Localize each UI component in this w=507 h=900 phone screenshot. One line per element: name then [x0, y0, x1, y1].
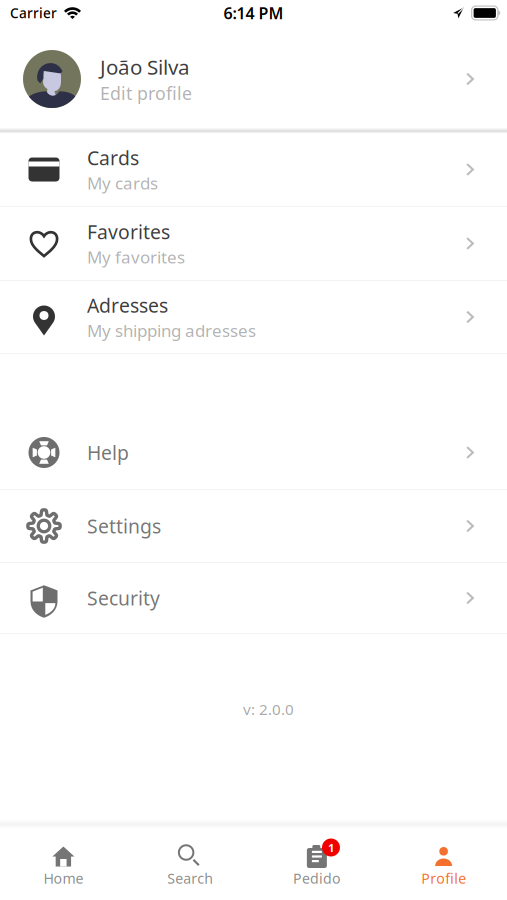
button[interactable]: Settings [0, 490, 507, 562]
staticText: Search [167, 869, 213, 888]
button[interactable]: Adresses [0, 281, 507, 353]
button[interactable]: Cards [0, 133, 507, 206]
button[interactable]: Security [0, 563, 507, 633]
button[interactable]: Help [0, 416, 507, 489]
staticText: My favorites [87, 246, 185, 268]
staticText: Settings [87, 513, 161, 539]
staticText: João Silva [100, 53, 190, 80]
staticText: Profile [421, 869, 466, 888]
staticText: Favorites [87, 219, 170, 245]
button[interactable]: Search [127, 826, 254, 900]
staticText: Security [87, 585, 160, 611]
staticText: 1 [328, 840, 334, 855]
button[interactable]: Profile [380, 826, 507, 900]
staticText: My cards [87, 172, 158, 194]
staticText: Help [87, 440, 129, 465]
button[interactable]: João Silva [0, 30, 507, 128]
staticText: Adresses [87, 292, 168, 318]
button[interactable]: Home [0, 826, 127, 900]
staticText: Pedido [293, 869, 341, 888]
staticText: Cards [87, 145, 139, 171]
staticText: Carrier [10, 4, 57, 22]
staticText: v: 2.0.0 [243, 699, 294, 719]
staticText: My shipping adresses [87, 319, 256, 342]
staticText: 6:14 PM [223, 2, 283, 24]
staticText: Edit profile [100, 81, 192, 105]
button[interactable]: 1 [253, 826, 380, 900]
staticText: Home [43, 869, 83, 888]
button[interactable]: Favorites [0, 207, 507, 280]
